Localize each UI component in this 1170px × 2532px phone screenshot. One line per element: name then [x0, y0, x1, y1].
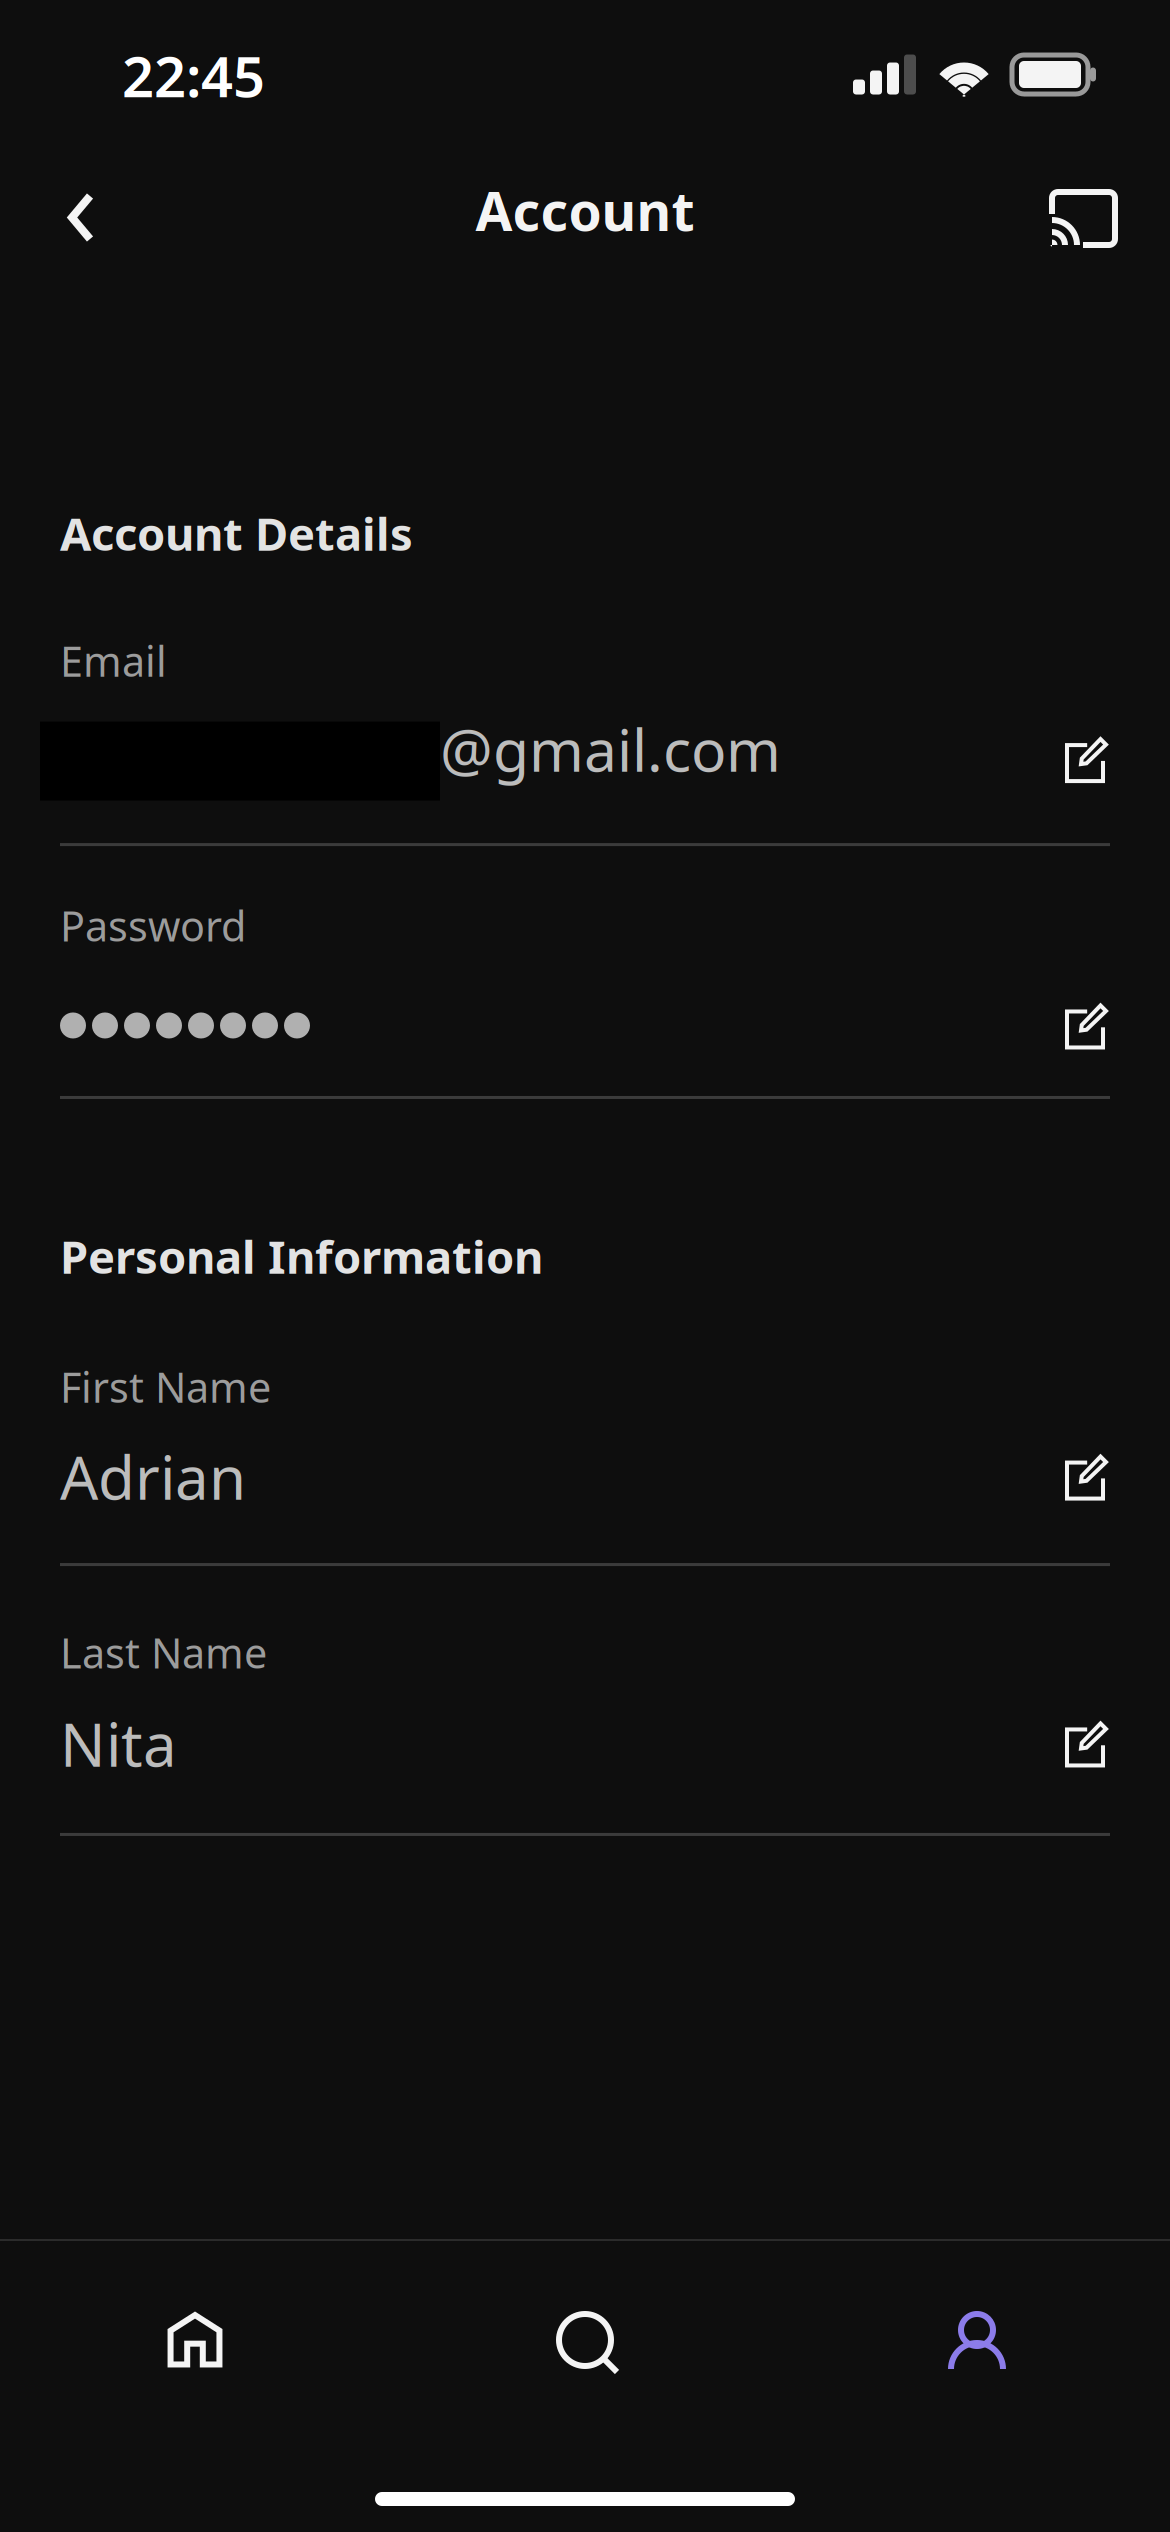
- button[interactable]: Back: [32, 160, 130, 275]
- button[interactable]: Screen mirroring: [1016, 159, 1151, 278]
- button[interactable]: Search: [390, 2241, 780, 2413]
- button[interactable]: Account: [780, 2241, 1170, 2412]
- staticText: Nita: [60, 1704, 177, 1783]
- button[interactable]: Edit email: [1065, 724, 1110, 774]
- staticText: 22:45: [122, 38, 265, 113]
- staticText: Personal Information: [60, 1226, 543, 1286]
- button[interactable]: Home: [0, 2241, 390, 2412]
- staticText: @gmail.com: [440, 710, 781, 788]
- staticText: Account: [475, 175, 694, 246]
- button[interactable]: Edit first name: [1065, 1452, 1110, 1502]
- staticText: Password: [60, 898, 246, 953]
- button[interactable]: Edit last name: [1065, 1718, 1110, 1768]
- staticText: Last Name: [60, 1625, 267, 1680]
- staticText: First Name: [60, 1359, 271, 1414]
- button[interactable]: Edit password: [1065, 1006, 1110, 1056]
- staticText: Adrian: [60, 1437, 246, 1516]
- staticText: Email: [60, 633, 167, 688]
- staticText: Account Details: [60, 503, 413, 563]
